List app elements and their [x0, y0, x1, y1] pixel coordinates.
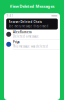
staticText: Deleted a message [13, 35, 39, 38]
staticText: View Deleted Messages [9, 4, 54, 9]
staticText: Alex Romero [13, 30, 32, 34]
staticText: Recover Deleted Chats [9, 20, 42, 24]
staticText: This message was deleted [13, 45, 48, 48]
staticText: See every message they erased [9, 24, 49, 28]
button[interactable]: Priya [4, 39, 60, 49]
button[interactable]: Alex Romero [4, 29, 60, 39]
staticText: Priya [13, 40, 20, 44]
staticText: 9:41 [7, 14, 14, 17]
